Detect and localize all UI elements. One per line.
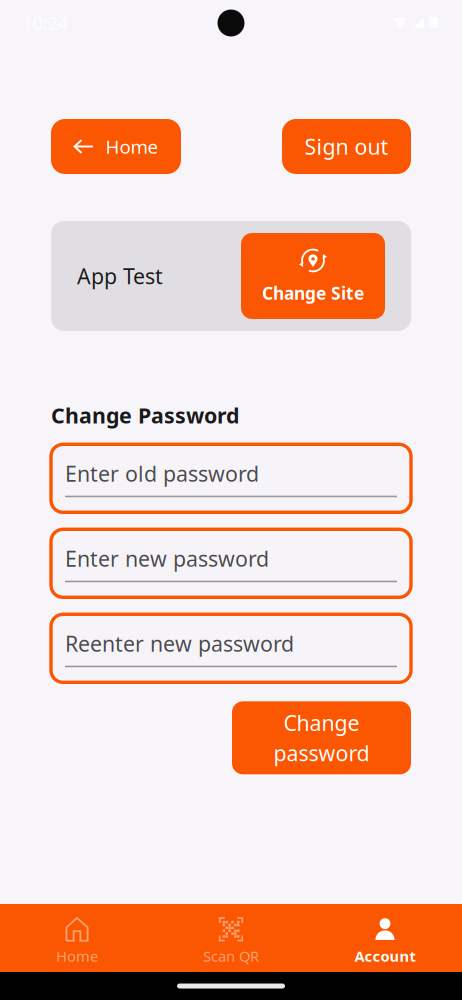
button[interactable]: Change (232, 701, 411, 774)
staticText: Change Site (262, 281, 364, 304)
button[interactable]: Home (0, 901, 154, 975)
staticText: Scan QR (203, 946, 259, 966)
staticText: Change (283, 708, 359, 737)
staticText: Change Password (51, 401, 239, 429)
button[interactable]: Home (51, 119, 181, 174)
button[interactable]: Reenter new password (51, 614, 411, 682)
button[interactable]: Enter old password (51, 444, 411, 512)
staticText: Home (56, 946, 98, 966)
button[interactable]: Enter new password (51, 529, 411, 597)
button[interactable]: Scan QR (154, 901, 308, 975)
staticText: Account (354, 946, 415, 966)
staticText: password (273, 739, 369, 767)
staticText: Sign out (304, 132, 388, 161)
button[interactable]: Account (308, 901, 462, 975)
button[interactable]: Change Site (241, 233, 385, 319)
staticText: App Test (77, 262, 163, 290)
staticText: Home (105, 134, 158, 159)
button[interactable]: Sign out (282, 119, 411, 174)
staticText: Reenter new password (65, 629, 294, 658)
staticText: Enter new password (65, 544, 269, 573)
staticText: Enter old password (65, 459, 259, 488)
